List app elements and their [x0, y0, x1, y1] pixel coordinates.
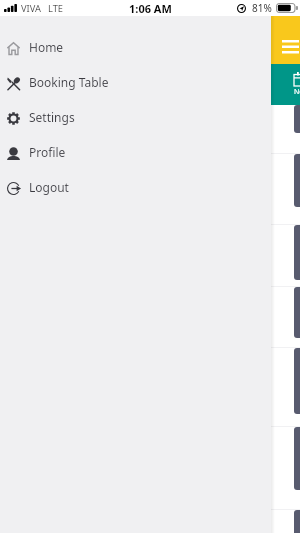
button[interactable]: Table 4 — [294, 287, 300, 338]
button[interactable]: Table 4 — [294, 510, 300, 533]
button[interactable]: Table 4 — [294, 427, 300, 490]
staticText: LTE — [48, 2, 64, 15]
staticText: 81% — [252, 1, 272, 15]
staticText: 1:06 AM — [129, 1, 172, 16]
button[interactable]: Settings — [0, 99, 271, 134]
button[interactable]: Logout — [0, 169, 271, 204]
staticText: Settings — [29, 109, 75, 125]
staticText: Booking Table — [29, 74, 109, 90]
button[interactable]: Table 4 — [294, 154, 300, 207]
button[interactable]: Open navigation menu — [276, 34, 300, 60]
staticText: VIVA — [21, 2, 41, 15]
button[interactable]: Table 4 — [294, 348, 300, 414]
staticText: Profile — [29, 144, 66, 160]
button[interactable]: Table 4 — [294, 105, 300, 133]
button[interactable]: Profile — [0, 134, 271, 169]
button[interactable]: Home — [0, 29, 271, 64]
button[interactable]: Booking Table — [0, 64, 271, 99]
staticText: Home — [29, 39, 64, 55]
staticText: New — [294, 87, 300, 97]
staticText: Logout — [29, 179, 69, 195]
button[interactable]: Table 4 — [294, 225, 300, 280]
button[interactable]: New — [271, 64, 300, 105]
